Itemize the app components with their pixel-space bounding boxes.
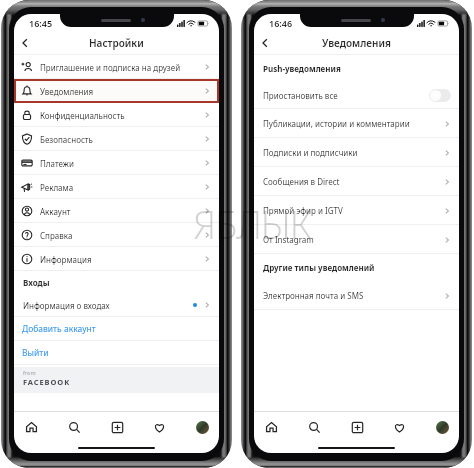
button[interactable]: Search bbox=[302, 415, 326, 439]
button[interactable]: Платежи bbox=[14, 151, 219, 175]
staticText: От Instagram bbox=[263, 234, 314, 245]
button[interactable]: Публикации, истории и комментарии bbox=[254, 109, 459, 138]
staticText: Push-уведомления bbox=[263, 63, 341, 74]
staticText: Информация bbox=[40, 254, 92, 265]
staticText: from bbox=[23, 369, 36, 376]
staticText: Входы bbox=[23, 277, 50, 288]
button[interactable]: Приостановить все bbox=[254, 81, 459, 109]
button[interactable]: Home bbox=[19, 415, 43, 439]
button[interactable]: Home bbox=[259, 415, 283, 439]
button[interactable]: Activity bbox=[387, 415, 411, 439]
button[interactable]: Уведомления bbox=[14, 79, 219, 103]
staticText: ЯБЛЫК bbox=[193, 198, 311, 250]
staticText: Добавить аккаунт bbox=[22, 323, 96, 335]
staticText: Справка bbox=[40, 230, 73, 241]
button[interactable]: Выйти bbox=[14, 341, 219, 365]
button[interactable]: Информация bbox=[14, 247, 219, 271]
button[interactable]: Справка bbox=[14, 223, 219, 247]
staticText: Приостановить все bbox=[263, 90, 338, 101]
button[interactable]: Приглашение и подписка на друзей bbox=[14, 55, 219, 79]
button[interactable]: Подписки и подписчики bbox=[254, 138, 459, 167]
button[interactable]: Аккаунт bbox=[14, 199, 219, 223]
staticText: Безопасность bbox=[40, 134, 93, 145]
button[interactable]: Конфиденциальность bbox=[14, 103, 219, 127]
staticText: 16:46 bbox=[269, 17, 293, 29]
staticText: Публикации, истории и комментарии bbox=[263, 118, 410, 129]
staticText: Прямой эфир и IGTV bbox=[263, 205, 343, 216]
button[interactable]: Электронная почта и SMS bbox=[254, 281, 459, 310]
staticText: Информация о входах bbox=[23, 300, 110, 311]
staticText: Уведомления bbox=[40, 86, 94, 97]
staticText: Платежи bbox=[40, 158, 74, 169]
button[interactable]: Прямой эфир и IGTV bbox=[254, 196, 459, 225]
button[interactable]: Add bbox=[105, 415, 129, 439]
staticText: FACEBOOK bbox=[23, 377, 71, 387]
button[interactable]: Profile bbox=[430, 415, 454, 439]
staticText: Сообщения в Direct bbox=[263, 176, 340, 187]
button[interactable]: Back bbox=[14, 32, 36, 54]
button[interactable]: Сообщения в Direct bbox=[254, 167, 459, 196]
staticText: Электронная почта и SMS bbox=[263, 290, 364, 301]
button[interactable]: Безопасность bbox=[14, 127, 219, 151]
staticText: Реклама bbox=[40, 182, 74, 193]
staticText: Другие типы уведомлений bbox=[263, 262, 375, 273]
button[interactable]: Добавить аккаунт bbox=[14, 317, 219, 341]
staticText: Приглашение и подписка на друзей bbox=[40, 62, 181, 73]
button[interactable]: Activity bbox=[147, 415, 171, 439]
staticText: 16:45 bbox=[29, 17, 53, 29]
staticText: Уведомления bbox=[322, 36, 391, 50]
staticText: Настройки bbox=[89, 36, 144, 50]
button[interactable]: Add bbox=[345, 415, 369, 439]
staticText: Аккаунт bbox=[40, 206, 71, 217]
button[interactable]: Search bbox=[62, 415, 86, 439]
button[interactable]: Реклама bbox=[14, 175, 219, 199]
button[interactable]: Информация о входах bbox=[14, 293, 219, 317]
staticText: Конфиденциальность bbox=[40, 110, 125, 121]
staticText: Выйти bbox=[22, 347, 49, 359]
button[interactable]: Back bbox=[254, 32, 276, 54]
staticText: Подписки и подписчики bbox=[263, 147, 358, 158]
button[interactable]: От Instagram bbox=[254, 225, 459, 254]
button[interactable]: Profile bbox=[190, 415, 214, 439]
